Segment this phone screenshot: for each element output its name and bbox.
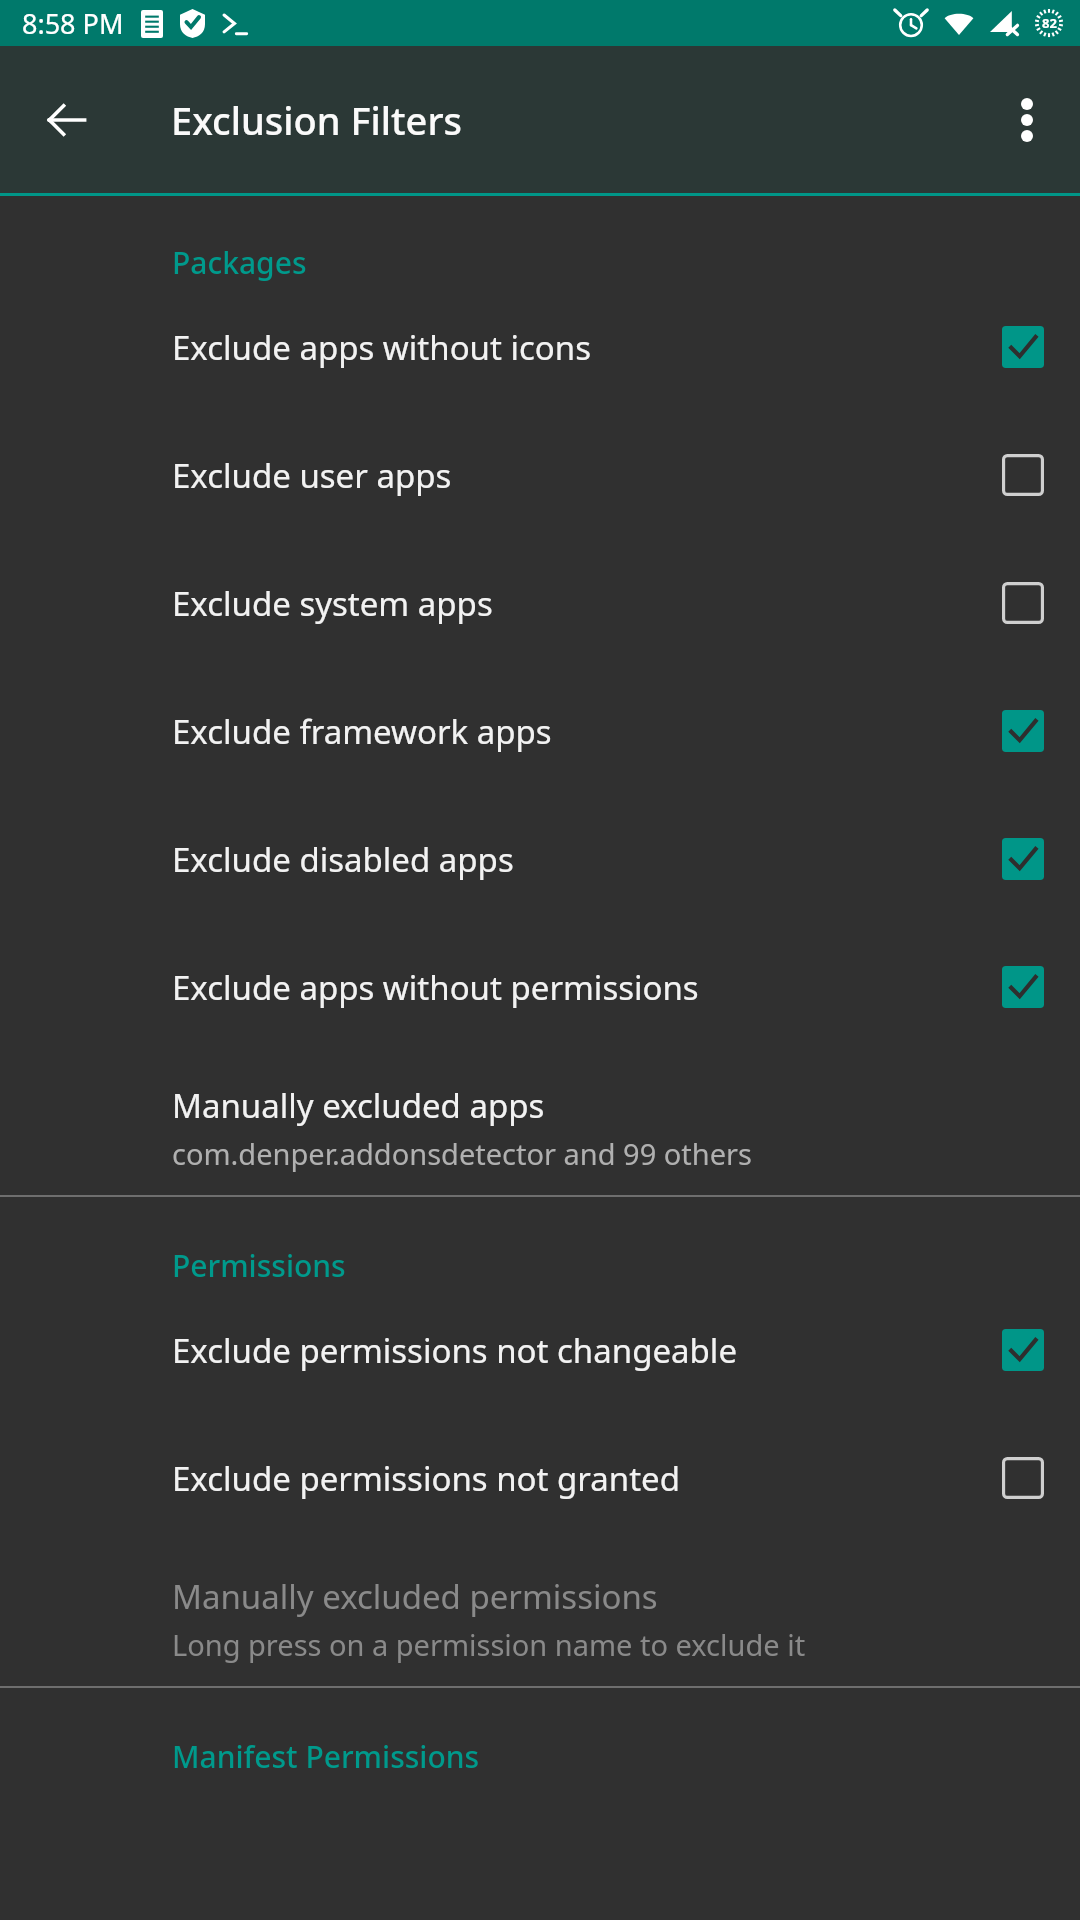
staticText: Exclude disabled apps xyxy=(172,837,1002,882)
staticText: Exclude system apps xyxy=(172,581,1002,626)
staticText: Exclude permissions not granted xyxy=(172,1456,1002,1501)
staticText: Long press on a permission name to exclu… xyxy=(172,1625,806,1664)
staticText: Exclusion Filters xyxy=(171,94,462,146)
staticText: 8:58 PM xyxy=(22,5,124,42)
button[interactable]: More options xyxy=(982,75,1072,165)
button[interactable]: Back xyxy=(22,75,112,165)
staticText: Exclude framework apps xyxy=(172,709,1002,754)
button[interactable]: Exclude permissions not changeable xyxy=(0,1286,1080,1414)
button[interactable]: Manually excluded apps xyxy=(0,1051,1080,1173)
staticText: Exclude user apps xyxy=(172,453,1002,498)
staticText: com.denper.addonsdetector and 99 others xyxy=(172,1134,752,1173)
staticText: Manifest Permissions xyxy=(172,1736,480,1777)
staticText: Permissions xyxy=(172,1245,346,1286)
staticText: Exclude permissions not changeable xyxy=(172,1328,1002,1373)
staticText: Exclude apps without icons xyxy=(172,325,1002,370)
button[interactable]: Exclude framework apps xyxy=(0,667,1080,795)
staticText: Manually excluded apps xyxy=(172,1083,545,1128)
button[interactable]: Exclude user apps xyxy=(0,411,1080,539)
staticText: Exclude apps without permissions xyxy=(172,965,1002,1010)
button[interactable]: Manually excluded permissions xyxy=(0,1542,1080,1664)
staticText: Manually excluded permissions xyxy=(172,1574,658,1619)
staticText: Packages xyxy=(172,242,307,283)
button[interactable]: Exclude apps without permissions xyxy=(0,923,1080,1051)
button[interactable]: Exclude system apps xyxy=(0,539,1080,667)
button[interactable]: Exclude disabled apps xyxy=(0,795,1080,923)
staticText: 82 xyxy=(1042,14,1057,32)
button[interactable]: Exclude apps without icons xyxy=(0,283,1080,411)
button[interactable]: Exclude permissions not granted xyxy=(0,1414,1080,1542)
